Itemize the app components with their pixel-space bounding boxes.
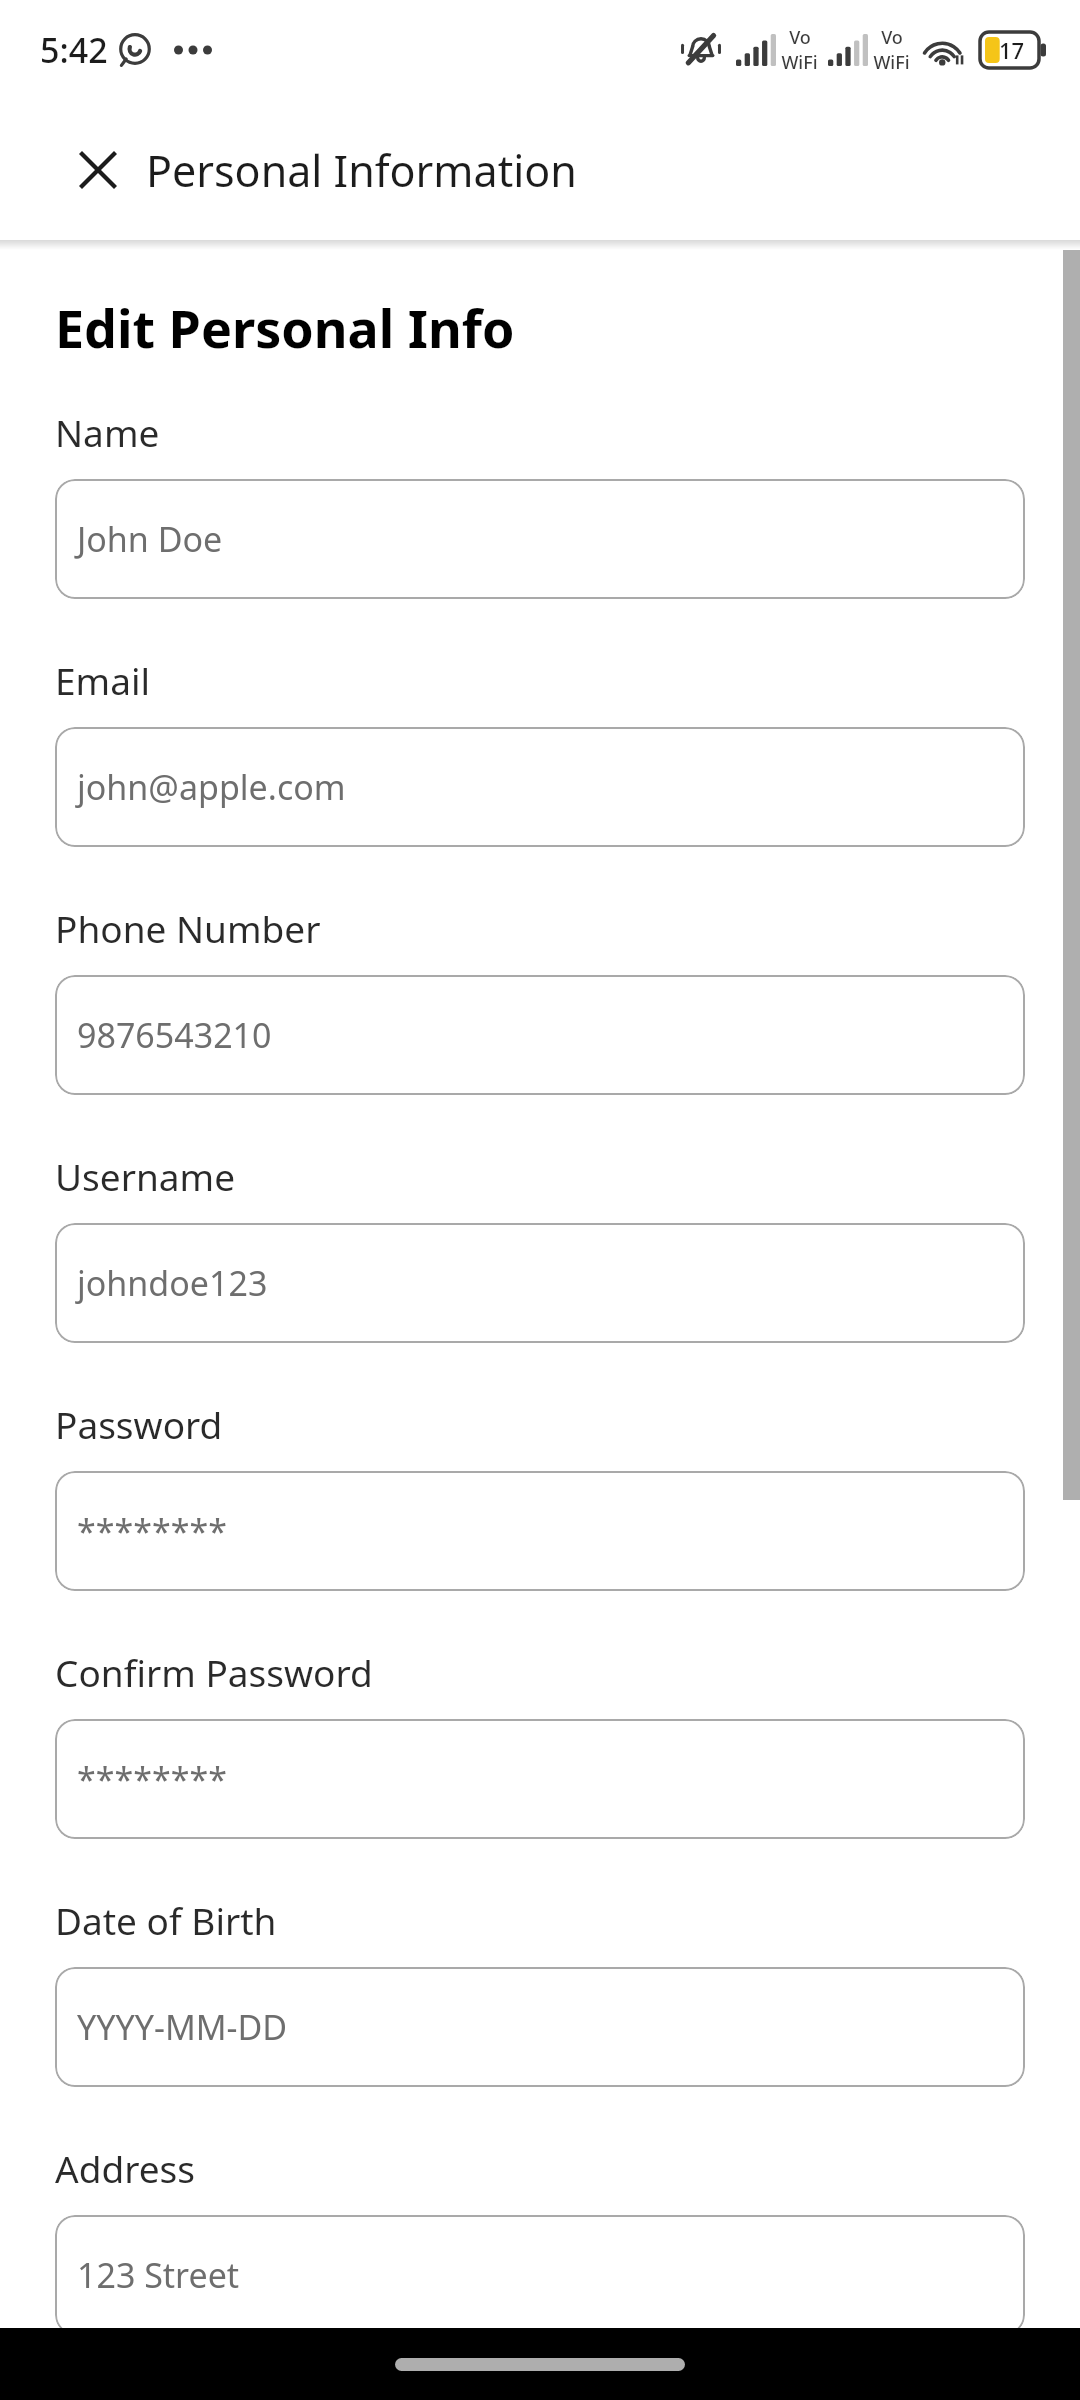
staticText: YYYY-MM-DD [77, 2004, 288, 2050]
staticText: 123 Street [77, 2252, 240, 2298]
staticText: Password [55, 1399, 223, 1449]
staticText: Confirm Password [55, 1647, 373, 1697]
staticText: Vo [881, 25, 903, 50]
staticText: Username [55, 1151, 236, 1201]
staticText: 17 [999, 35, 1025, 65]
button[interactable]: johndoe123 [55, 1223, 1025, 1343]
staticText: Date of Birth [55, 1895, 277, 1945]
staticText: Personal Information [146, 141, 577, 200]
button[interactable]: Home gesture bar [395, 2358, 685, 2371]
staticText: 5:42 [40, 27, 108, 73]
button[interactable]: Close [72, 144, 124, 196]
button[interactable]: John Doe [55, 479, 1025, 599]
staticText: John Doe [77, 516, 223, 562]
staticText: Vo [789, 25, 811, 50]
staticText: Email [55, 655, 151, 705]
staticText: Address [55, 2143, 196, 2193]
staticText: WiFi [781, 50, 818, 75]
button[interactable]: YYYY-MM-DD [55, 1967, 1025, 2087]
staticText: WiFi [873, 50, 910, 75]
staticText: 9876543210 [77, 1012, 272, 1058]
staticText: johndoe123 [77, 1260, 268, 1306]
staticText: ******** [77, 1756, 227, 1802]
button[interactable]: ******** [55, 1719, 1025, 1839]
button[interactable]: ******** [55, 1471, 1025, 1591]
button[interactable]: 9876543210 [55, 975, 1025, 1095]
staticText: Edit Personal Info [55, 292, 515, 363]
staticText: john@apple.com [77, 764, 346, 810]
button[interactable]: john@apple.com [55, 727, 1025, 847]
staticText: Name [55, 407, 160, 457]
button[interactable]: 123 Street [55, 2215, 1025, 2328]
staticText: ******** [77, 1508, 227, 1554]
staticText: Phone Number [55, 903, 321, 953]
